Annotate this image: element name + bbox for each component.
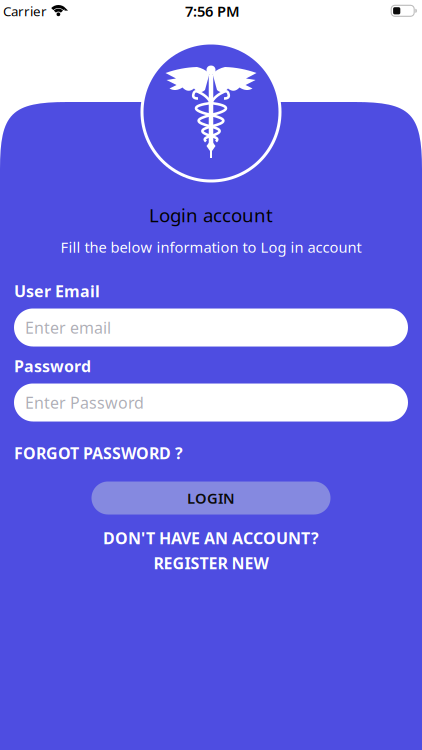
staticText: 7:56 PM xyxy=(185,1,240,21)
staticText: User Email xyxy=(14,280,100,302)
button[interactable]: FORGOT PASSWORD ? xyxy=(14,442,408,464)
staticText: Password xyxy=(14,355,91,377)
button[interactable]: REGISTER NEW xyxy=(153,552,268,574)
button[interactable]: Enter Password xyxy=(14,383,408,421)
staticText: Fill the below information to Log in acc… xyxy=(60,237,361,257)
button[interactable]: Enter email xyxy=(14,308,408,346)
staticText: LOGIN xyxy=(187,488,235,508)
staticText: Enter Password xyxy=(25,392,144,413)
staticText: Carrier xyxy=(3,2,47,20)
staticText: DON'T HAVE AN ACCOUNT? xyxy=(103,527,319,549)
staticText: FORGOT PASSWORD ? xyxy=(14,442,183,464)
staticText: REGISTER NEW xyxy=(153,552,268,574)
button[interactable]: LOGIN xyxy=(91,481,330,514)
staticText: Login account xyxy=(149,203,273,227)
staticText: Enter email xyxy=(25,317,111,338)
